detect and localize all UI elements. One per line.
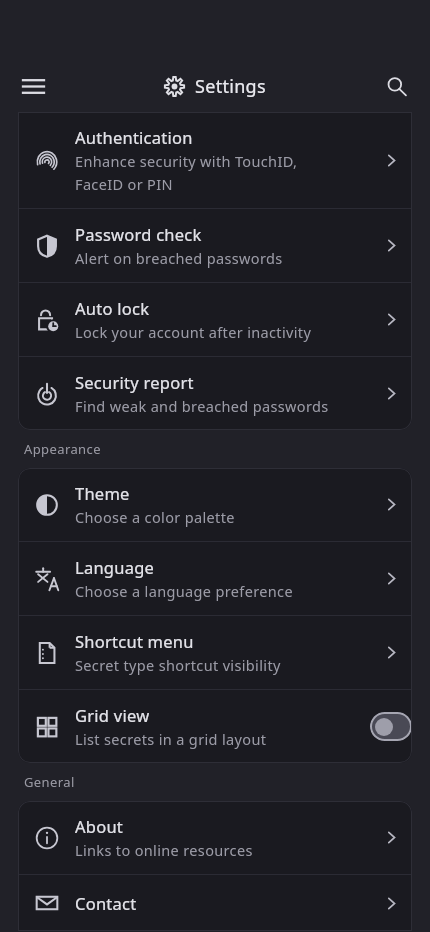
button[interactable]: Grid view toggle, off [370,712,412,741]
staticText: Enhance security with TouchID, [75,151,298,171]
staticText: Language [75,556,155,578]
button[interactable]: Authentication [18,112,412,208]
staticText: Alert on breached passwords [75,248,283,268]
staticText: Links to online resources [75,840,253,860]
staticText: Secret type shortcut visibility [75,655,281,675]
button[interactable]: Open navigation menu [16,69,50,103]
button[interactable]: Search [379,69,413,103]
staticText: FaceID or PIN [75,174,173,194]
staticText: Find weak and breached passwords [75,396,329,416]
staticText: Grid view [75,704,150,726]
staticText: General [24,773,75,791]
staticText: Choose a language preference [75,581,293,601]
staticText: Shortcut menu [75,630,194,652]
button[interactable]: Language [18,542,412,615]
button[interactable]: Grid view [18,690,412,763]
staticText: Choose a color palette [75,507,235,527]
staticText: Appearance [24,440,101,458]
staticText: Theme [75,482,130,504]
button[interactable]: Password check [18,209,412,282]
staticText: Auto lock [75,297,150,319]
staticText: About [75,815,124,837]
button[interactable]: Security report [18,357,412,430]
button[interactable]: Contact [18,875,412,931]
staticText: List secrets in a grid layout [75,729,267,749]
button[interactable]: Auto lock [18,283,412,356]
staticText: Lock your account after inactivity [75,322,312,342]
button[interactable]: About [18,801,412,874]
staticText: Password check [75,223,202,245]
staticText: Authentication [75,126,193,148]
staticText: Security report [75,371,194,393]
staticText: Contact [75,892,137,914]
button[interactable]: Shortcut menu [18,616,412,689]
staticText: Settings [195,74,266,99]
button[interactable]: Theme [18,468,412,541]
